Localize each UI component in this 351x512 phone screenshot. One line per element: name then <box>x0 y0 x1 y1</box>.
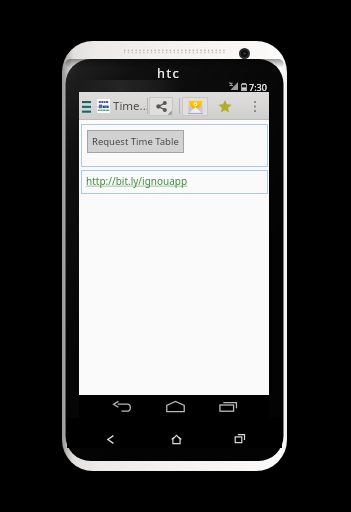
staticText: Request Time Table <box>92 135 179 148</box>
button[interactable]: Back <box>104 395 140 418</box>
staticText: 7:30 <box>249 81 267 93</box>
button[interactable]: Email <box>182 97 208 116</box>
button[interactable]: Share <box>149 97 173 116</box>
button[interactable]: Back <box>94 429 126 449</box>
button[interactable]: Recents <box>210 395 246 418</box>
staticText: Time... <box>113 98 149 114</box>
button[interactable]: Request Time Table <box>87 130 184 153</box>
button[interactable]: Navigate up <box>80 92 93 119</box>
button[interactable]: Home <box>160 429 192 449</box>
button[interactable]: Recents <box>224 428 256 448</box>
button[interactable]: http://bit.ly/ignouapp <box>86 174 188 188</box>
button[interactable]: More options <box>247 94 263 118</box>
button[interactable]: Favorite <box>214 96 235 116</box>
button[interactable]: Home <box>157 395 193 418</box>
staticText: http://bit.ly/ignouapp <box>86 174 188 188</box>
staticText: htc <box>157 64 181 82</box>
